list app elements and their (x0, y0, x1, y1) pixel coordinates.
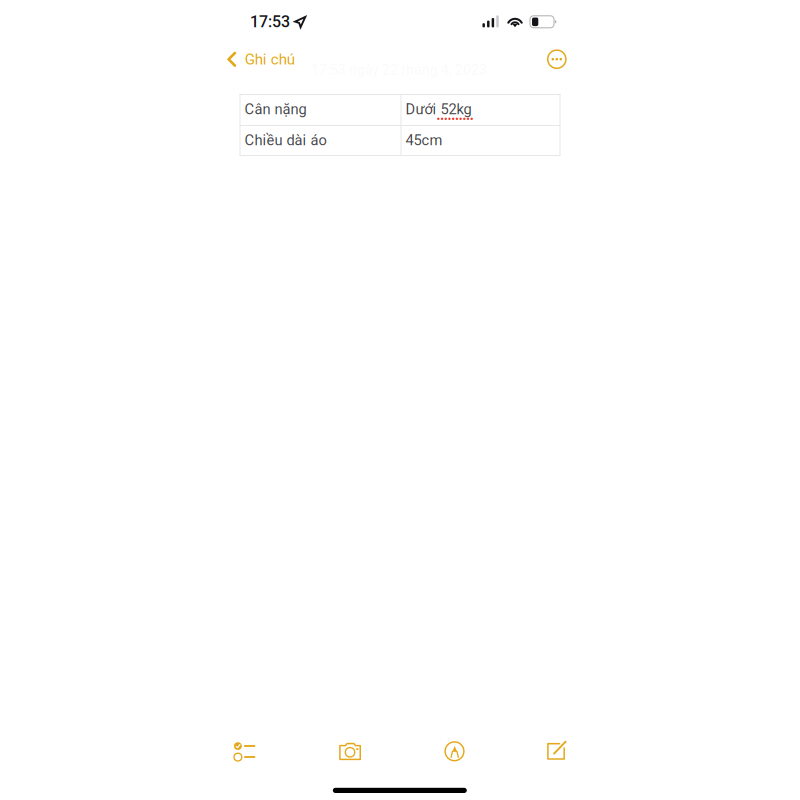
staticText: Dưới 52kg (405, 101, 471, 118)
staticText: 17:53 (250, 12, 290, 31)
button[interactable]: Markup (431, 729, 477, 773)
button[interactable]: Checklist (222, 730, 268, 774)
button[interactable]: More options (537, 39, 577, 79)
button[interactable]: Camera (327, 729, 373, 773)
button[interactable]: Ghi chú (217, 39, 305, 79)
staticText: Chiều dài áo (244, 132, 326, 149)
staticText: 45cm (405, 132, 442, 149)
staticText: Ghi chú (245, 50, 295, 68)
staticText: Cân nặng (244, 101, 306, 118)
button[interactable]: New note (533, 728, 579, 772)
